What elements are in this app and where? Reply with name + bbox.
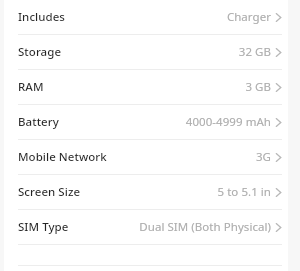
staticText: Charger — [226, 9, 271, 25]
staticText: Dual SIM (Both Physical) — [139, 219, 271, 235]
staticText: Mobile Network — [18, 149, 107, 165]
staticText: 32 GB — [238, 44, 271, 60]
staticText: SIM Type — [18, 219, 69, 235]
staticText: Storage — [18, 44, 62, 60]
button[interactable]: Includes — [4, 0, 288, 34]
staticText: 3G — [255, 149, 271, 165]
button[interactable]: Storage — [4, 35, 288, 69]
button[interactable]: RAM — [4, 70, 288, 104]
staticText: 5 to 5.1 in — [217, 184, 271, 200]
button[interactable]: Screen Size — [4, 175, 288, 209]
button[interactable]: Mobile Network — [4, 140, 288, 174]
staticText: RAM — [18, 79, 44, 95]
button[interactable]: Battery — [4, 105, 288, 139]
staticText: Screen Size — [18, 184, 81, 200]
staticText: Includes — [18, 9, 65, 25]
staticText: 4000-4999 mAh — [185, 114, 271, 130]
staticText: Battery — [18, 114, 59, 130]
staticText: 3 GB — [245, 79, 271, 95]
button[interactable]: SIM Type — [4, 210, 288, 244]
